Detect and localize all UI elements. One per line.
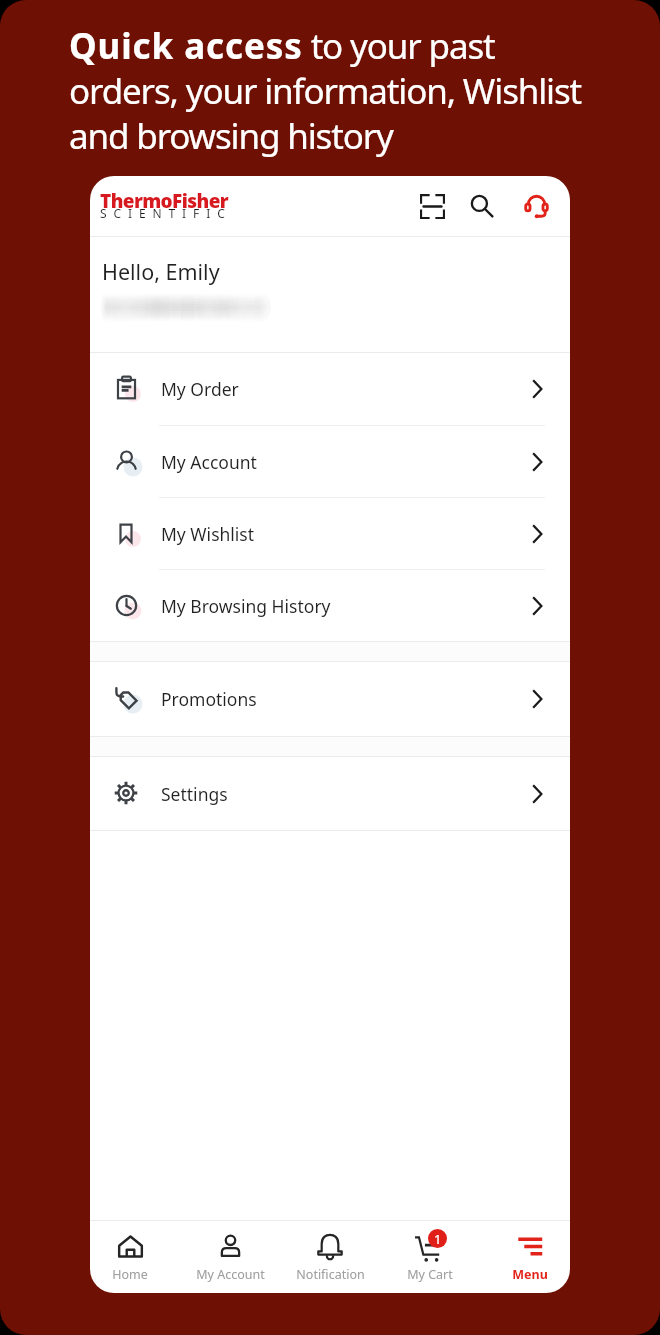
staticText: My Order [161, 377, 239, 401]
button[interactable]: Notification [280, 1221, 380, 1293]
button[interactable]: Menu [480, 1221, 570, 1293]
button[interactable]: My Account [180, 1221, 280, 1293]
staticText: My Account [161, 450, 257, 474]
button[interactable]: Customer support [513, 183, 559, 229]
staticText: My Browsing History [161, 594, 331, 618]
button[interactable]: Promotions [90, 662, 570, 736]
button[interactable]: ThermoFisher [100, 183, 232, 229]
staticText: ThermoFisher [100, 188, 229, 214]
staticText: My Account [196, 1266, 265, 1283]
button[interactable]: 1 [380, 1221, 480, 1293]
staticText: Home [112, 1266, 148, 1283]
button[interactable]: My Account [90, 426, 570, 497]
button[interactable]: Settings [90, 757, 570, 830]
staticText: Notification [296, 1266, 365, 1283]
staticText: My Cart [407, 1266, 453, 1283]
button[interactable]: My Browsing History [90, 570, 570, 641]
staticText: SCIENTIFIC [100, 205, 232, 221]
button[interactable]: Scan barcode [409, 183, 455, 229]
staticText: My Wishlist [161, 522, 255, 546]
staticText: Hello, Emily [102, 257, 220, 286]
staticText: 1 [434, 1230, 442, 1248]
button[interactable]: Search [459, 183, 505, 229]
staticText: Quick access to your past orders, your i… [69, 22, 582, 160]
staticText: Menu [512, 1266, 548, 1283]
button[interactable]: Home [90, 1221, 180, 1293]
button[interactable]: My Wishlist [90, 498, 570, 569]
button[interactable]: My Order [90, 353, 570, 425]
staticText: Promotions [161, 687, 257, 711]
staticText: Settings [161, 782, 228, 806]
